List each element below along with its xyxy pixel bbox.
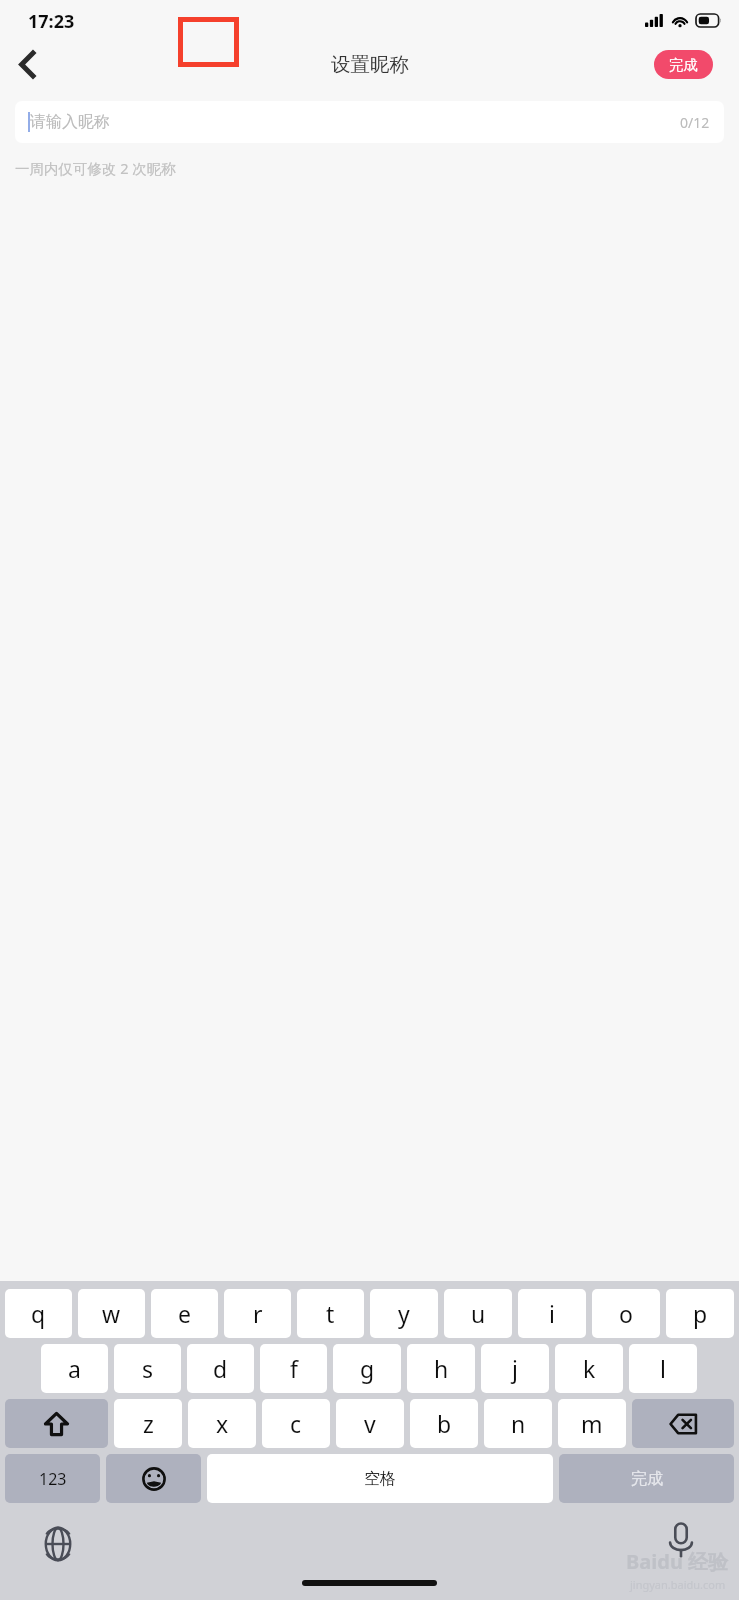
- staticText: k: [583, 1353, 596, 1384]
- button[interactable]: h: [407, 1344, 475, 1393]
- button[interactable]: w: [78, 1289, 145, 1338]
- staticText: 17:23: [28, 9, 75, 34]
- staticText: q: [31, 1298, 46, 1329]
- button[interactable]: e: [151, 1289, 218, 1338]
- staticText: b: [437, 1408, 452, 1439]
- staticText: 完成: [669, 56, 698, 74]
- button[interactable]: l: [629, 1344, 697, 1393]
- staticText: w: [102, 1298, 121, 1329]
- button[interactable]: b: [410, 1399, 478, 1448]
- button[interactable]: Emoji: [106, 1454, 201, 1503]
- button[interactable]: o: [592, 1289, 660, 1338]
- staticText: 空格: [364, 1469, 396, 1489]
- staticText: l: [660, 1353, 666, 1384]
- button[interactable]: Back: [0, 38, 54, 90]
- staticText: i: [549, 1298, 555, 1329]
- staticText: r: [253, 1298, 263, 1329]
- staticText: 请输入昵称: [30, 112, 110, 132]
- button[interactable]: j: [481, 1344, 549, 1393]
- staticText: g: [360, 1353, 375, 1384]
- button[interactable]: a: [41, 1344, 108, 1393]
- button[interactable]: 请输入昵称: [15, 101, 724, 143]
- button[interactable]: Switch keyboard: [35, 1521, 81, 1567]
- button[interactable]: 完成: [559, 1454, 734, 1503]
- button[interactable]: i: [518, 1289, 586, 1338]
- staticText: x: [216, 1408, 229, 1439]
- button[interactable]: 空格: [207, 1454, 553, 1503]
- button[interactable]: n: [484, 1399, 552, 1448]
- staticText: 0/12: [680, 113, 710, 132]
- button[interactable]: z: [114, 1399, 182, 1448]
- button[interactable]: Shift: [5, 1399, 108, 1448]
- button[interactable]: m: [558, 1399, 626, 1448]
- staticText: c: [290, 1408, 302, 1439]
- staticText: n: [511, 1408, 526, 1439]
- staticText: z: [143, 1408, 154, 1439]
- staticText: p: [693, 1298, 708, 1329]
- button[interactable]: k: [555, 1344, 623, 1393]
- button[interactable]: d: [187, 1344, 254, 1393]
- button[interactable]: 123: [5, 1454, 100, 1503]
- staticText: u: [471, 1298, 486, 1329]
- staticText: m: [581, 1408, 603, 1439]
- staticText: t: [326, 1298, 335, 1329]
- staticText: j: [512, 1353, 518, 1384]
- staticText: e: [178, 1298, 191, 1329]
- staticText: jingyan.baidu.com: [630, 1577, 726, 1592]
- button[interactable]: g: [333, 1344, 401, 1393]
- button[interactable]: 完成: [654, 50, 713, 79]
- button[interactable]: Voice input: [658, 1517, 704, 1563]
- button[interactable]: Delete: [632, 1399, 734, 1448]
- button[interactable]: y: [370, 1289, 438, 1338]
- button[interactable]: x: [188, 1399, 256, 1448]
- staticText: o: [619, 1298, 633, 1329]
- staticText: 完成: [631, 1469, 663, 1489]
- staticText: d: [213, 1353, 228, 1384]
- staticText: f: [290, 1353, 298, 1384]
- staticText: s: [142, 1353, 154, 1384]
- button[interactable]: v: [336, 1399, 404, 1448]
- staticText: Baidu 经验: [626, 1548, 729, 1575]
- button[interactable]: f: [260, 1344, 327, 1393]
- staticText: 一周内仅可修改 2 次昵称: [15, 158, 176, 178]
- button[interactable]: r: [224, 1289, 291, 1338]
- button[interactable]: c: [262, 1399, 330, 1448]
- staticText: v: [364, 1408, 376, 1439]
- button[interactable]: t: [297, 1289, 364, 1338]
- staticText: a: [68, 1353, 81, 1384]
- staticText: 设置昵称: [331, 52, 409, 77]
- staticText: y: [398, 1298, 410, 1329]
- button[interactable]: u: [444, 1289, 512, 1338]
- button[interactable]: s: [114, 1344, 181, 1393]
- staticText: 123: [39, 1468, 67, 1490]
- button[interactable]: q: [5, 1289, 72, 1338]
- staticText: h: [434, 1353, 449, 1384]
- button[interactable]: p: [666, 1289, 734, 1338]
